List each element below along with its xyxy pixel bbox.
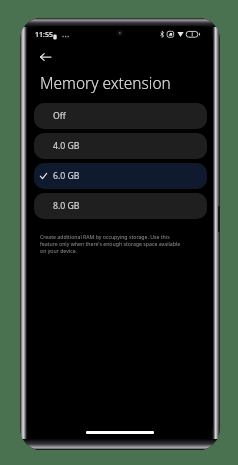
button[interactable]: Back [31, 43, 59, 71]
staticText: 11:55 [35, 30, 53, 40]
staticText: 6.0 GB [53, 170, 80, 182]
button[interactable]: 4.0 GB [34, 133, 207, 159]
button[interactable]: 6.0 GB [34, 163, 207, 189]
button[interactable]: 8.0 GB [34, 193, 207, 219]
button[interactable]: Off [34, 103, 207, 129]
staticText: Memory extension [40, 72, 171, 93]
staticText: Off [53, 110, 66, 122]
staticText: 8.0 GB [53, 200, 80, 212]
staticText: Create additional RAM by occupying stora… [40, 233, 186, 254]
staticText: 4.0 GB [53, 140, 80, 152]
